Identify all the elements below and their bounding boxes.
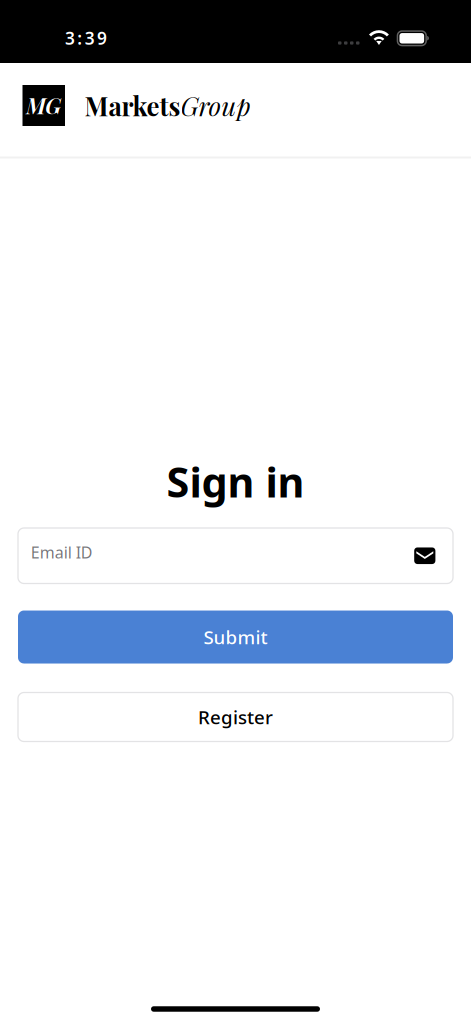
staticText: Sign in [166,454,304,509]
staticText: Group [180,88,250,123]
button[interactable]: Register [18,692,453,741]
staticText: Submit [203,625,267,649]
staticText: MG [26,91,61,120]
staticText: 3:39 [65,26,107,49]
staticText: Email ID [31,542,93,563]
button[interactable]: Submit [18,610,453,663]
staticText: Register [198,705,273,729]
staticText: Markets [84,88,180,123]
